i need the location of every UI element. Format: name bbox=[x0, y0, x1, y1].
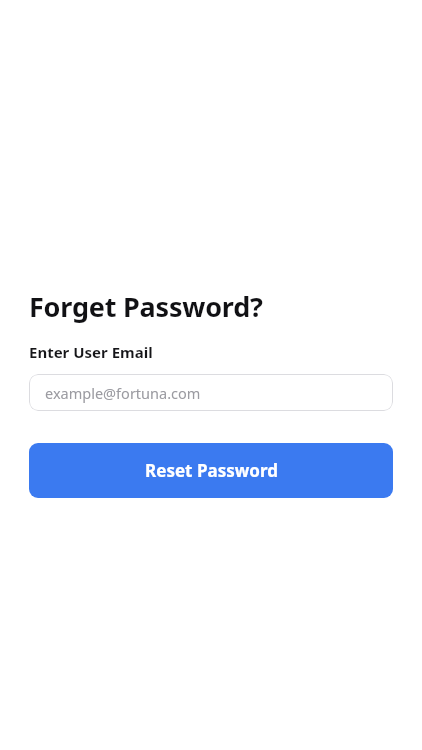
staticText: example@fortuna.com bbox=[45, 383, 201, 403]
staticText: Reset Password bbox=[145, 459, 278, 482]
button[interactable]: Reset Password bbox=[29, 443, 393, 498]
button[interactable]: example@fortuna.com bbox=[29, 374, 393, 411]
staticText: Enter User Email bbox=[29, 342, 153, 362]
staticText: Forget Password? bbox=[29, 288, 263, 325]
